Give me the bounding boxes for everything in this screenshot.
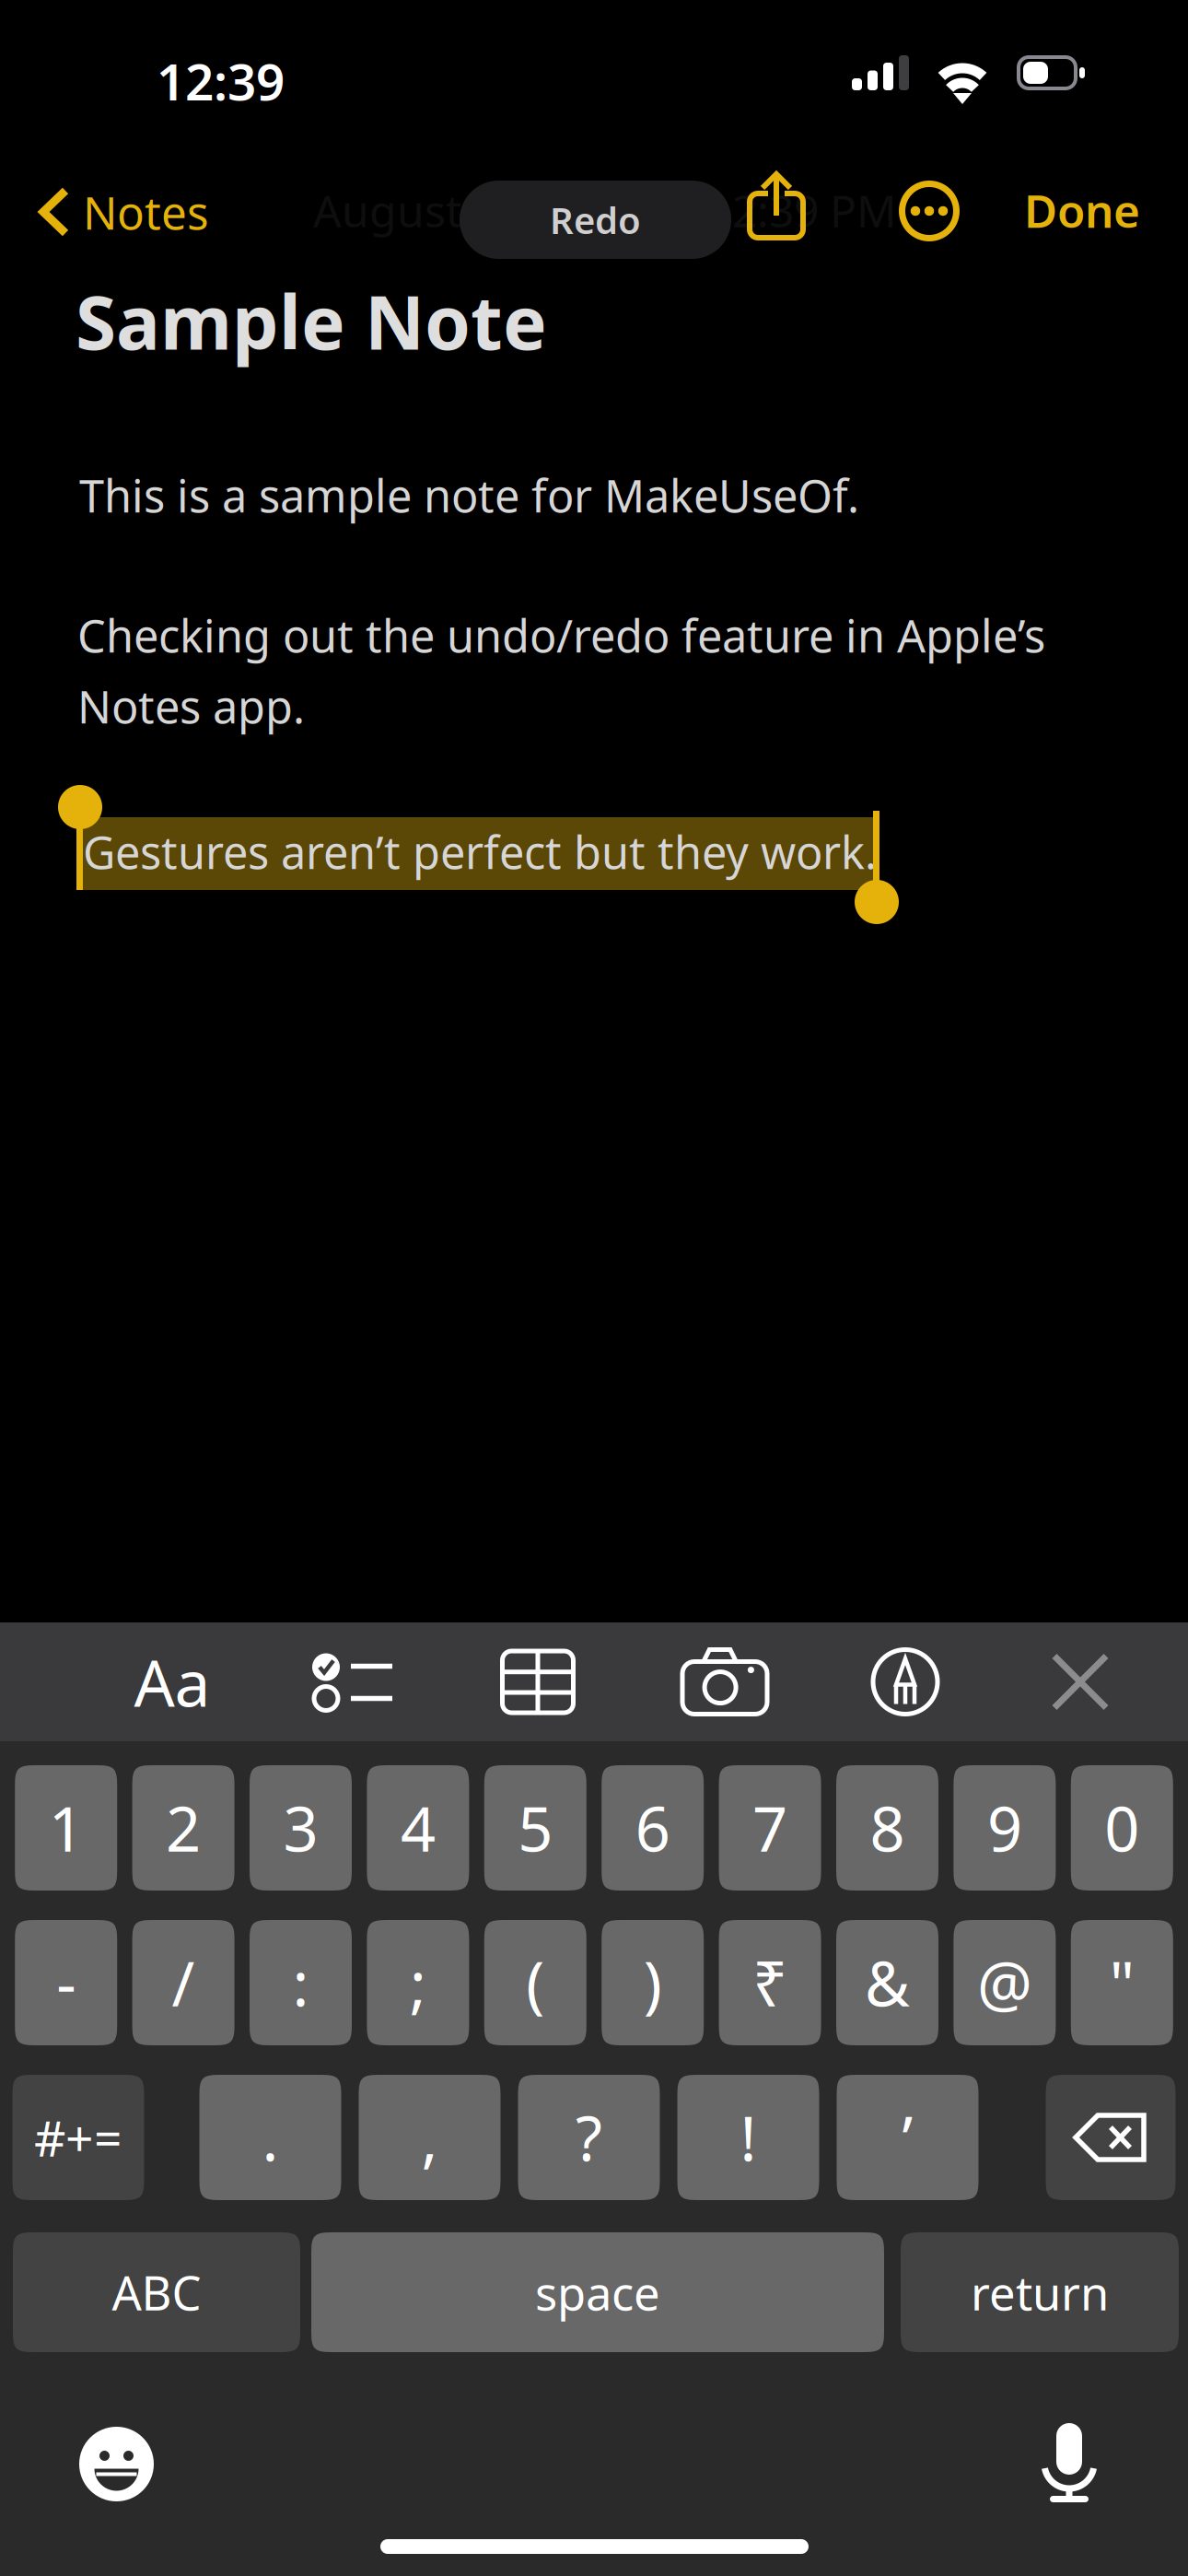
staticText: 0 [1104, 1787, 1139, 1869]
button[interactable]: return [901, 2232, 1179, 2352]
button[interactable]: . [199, 2075, 341, 2200]
button[interactable]: / [132, 1920, 234, 2045]
button[interactable]: ’ [837, 2075, 978, 2200]
button[interactable]: #+= [12, 2075, 144, 2200]
button[interactable]: ! [677, 2075, 819, 2200]
button[interactable]: ? [518, 2075, 660, 2200]
button[interactable]: space [311, 2232, 884, 2352]
button[interactable]: More options [899, 181, 960, 241]
button[interactable]: Aa [85, 1622, 260, 1741]
staticText: Notes [83, 182, 209, 242]
staticText: Redo [550, 195, 641, 244]
staticText: Checking out the undo/redo feature in Ap… [77, 605, 1045, 665]
staticText: " [1110, 1942, 1134, 2023]
staticText: / [172, 1942, 195, 2023]
staticText: Done [1024, 180, 1140, 240]
staticText: ! [740, 2097, 757, 2178]
button[interactable]: " [1071, 1920, 1173, 2045]
button[interactable]: 8 [836, 1765, 938, 1891]
button[interactable]: 4 [367, 1765, 469, 1891]
staticText: space [535, 2261, 660, 2323]
button[interactable]: ) [602, 1920, 704, 2045]
staticText: 7 [752, 1787, 787, 1869]
button[interactable]: 5 [484, 1765, 586, 1891]
staticText: - [56, 1942, 76, 2023]
staticText: , [421, 2097, 438, 2178]
staticText: & [865, 1942, 910, 2023]
staticText: Notes app. [77, 676, 305, 736]
button[interactable]: @ [954, 1920, 1056, 2045]
button[interactable]: Emoji keyboard [79, 2427, 154, 2501]
staticText: 8 [870, 1787, 905, 1869]
button[interactable]: Dictation [1041, 2423, 1098, 2502]
button[interactable]: Markup [818, 1622, 993, 1741]
button[interactable]: Delete [1046, 2075, 1176, 2200]
staticText: @ [977, 1942, 1032, 2023]
button[interactable]: Share [748, 171, 805, 243]
staticText: 9 [987, 1787, 1022, 1869]
button[interactable]: Checklist [264, 1622, 439, 1741]
button[interactable]: - [15, 1920, 117, 2045]
staticText: 12:39 [157, 47, 285, 114]
staticText: This is a sample note for MakeUseOf. [79, 465, 859, 525]
staticText: . [262, 2097, 279, 2178]
button[interactable]: Notes [28, 175, 285, 249]
staticText: Gestures aren’t perfect but they work. [83, 822, 877, 881]
staticText: ₹ [752, 1942, 787, 2023]
button[interactable]: : [250, 1920, 352, 2045]
staticText: 6 [635, 1787, 670, 1869]
button[interactable]: 1 [15, 1765, 117, 1891]
staticText: August 20, 2023 at 12:39 PM [313, 181, 897, 239]
button[interactable]: ( [484, 1920, 586, 2045]
button[interactable]: ABC [13, 2232, 300, 2352]
staticText: 2 [166, 1787, 201, 1869]
staticText: 4 [401, 1787, 436, 1869]
staticText: Aa [134, 1639, 210, 1724]
button[interactable]: Table [450, 1622, 625, 1741]
staticText: return [971, 2261, 1109, 2323]
button[interactable]: 0 [1071, 1765, 1173, 1891]
button[interactable]: & [836, 1920, 938, 2045]
button[interactable]: , [359, 2075, 501, 2200]
staticText: 3 [283, 1787, 318, 1869]
staticText: ABC [112, 2261, 201, 2323]
staticText: #+= [34, 2105, 122, 2170]
staticText: 1 [49, 1787, 84, 1869]
staticText: Sample Note [76, 272, 547, 370]
staticText: ; [410, 1942, 426, 2023]
staticText: ’ [902, 2097, 913, 2178]
button[interactable]: Hide keyboard [993, 1622, 1168, 1741]
staticText: ) [643, 1942, 662, 2023]
button[interactable]: Done [1004, 171, 1160, 249]
button[interactable]: 3 [250, 1765, 352, 1891]
staticText: ( [526, 1942, 545, 2023]
staticText: : [292, 1942, 309, 2023]
button[interactable]: 9 [954, 1765, 1056, 1891]
button[interactable]: 7 [719, 1765, 821, 1891]
staticText: ? [576, 2097, 602, 2178]
button[interactable]: 6 [602, 1765, 704, 1891]
button[interactable]: ₹ [719, 1920, 821, 2045]
staticText: 5 [518, 1787, 553, 1869]
button[interactable]: Camera [637, 1622, 812, 1741]
button[interactable]: 2 [132, 1765, 234, 1891]
button[interactable]: ; [367, 1920, 469, 2045]
